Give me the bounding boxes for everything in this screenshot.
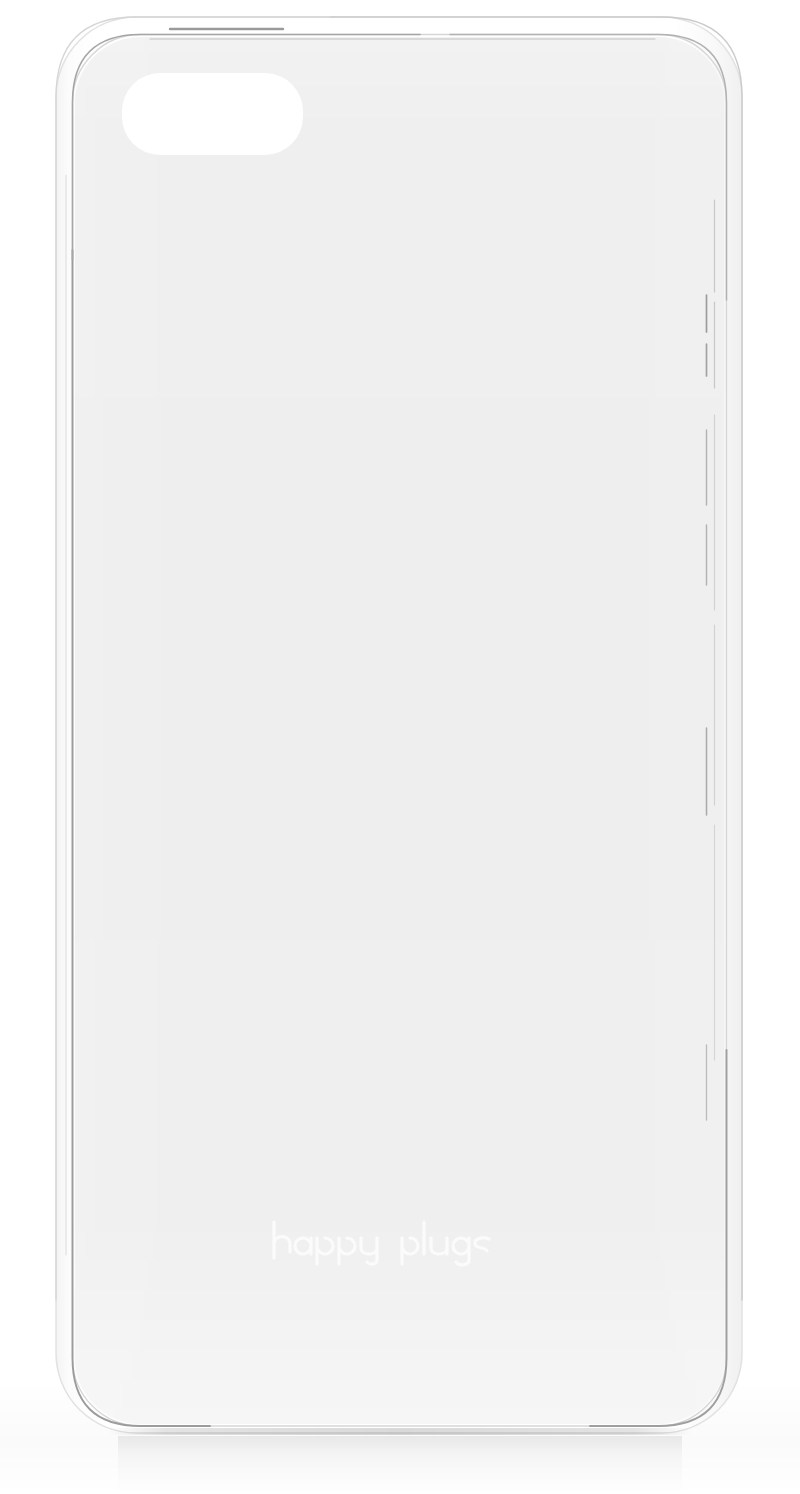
button[interactable]: Transparent happy plugs phone case — [0, 0, 800, 1494]
